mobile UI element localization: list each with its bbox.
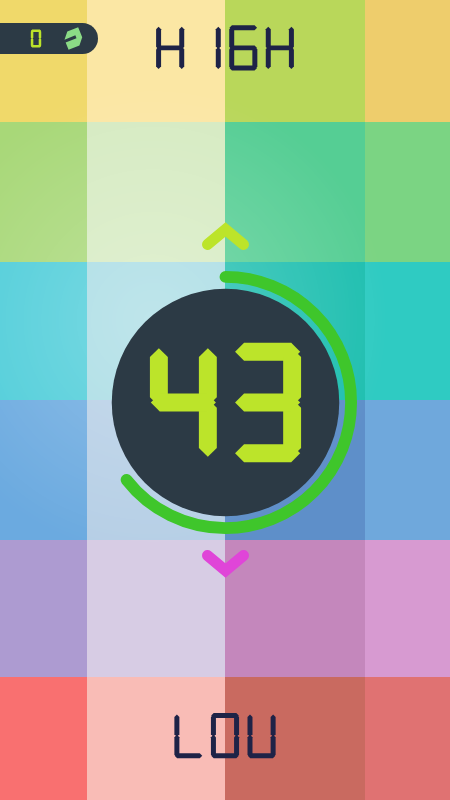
button[interactable]: Value 43: [94, 271, 357, 534]
button[interactable]: [0, 0, 450, 84]
button[interactable]: Increase: [202, 224, 249, 250]
button[interactable]: Decrease: [202, 550, 249, 576]
button[interactable]: [0, 692, 450, 776]
button[interactable]: Battery status: [0, 23, 98, 54]
